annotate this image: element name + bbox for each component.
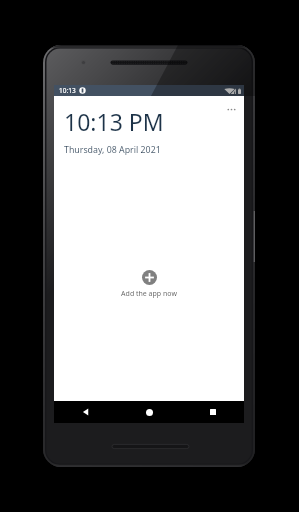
button[interactable]: More options bbox=[222, 100, 240, 118]
staticText: 10:13 bbox=[59, 86, 76, 95]
button[interactable]: Home bbox=[118, 401, 181, 423]
button[interactable]: Add the app now bbox=[121, 270, 177, 299]
button[interactable]: Recent apps bbox=[181, 401, 244, 423]
staticText: Add the app now bbox=[121, 289, 177, 299]
button[interactable]: Back bbox=[54, 401, 118, 423]
staticText: 10:13 PM bbox=[64, 106, 164, 137]
staticText: Thursday, 08 April 2021 bbox=[64, 144, 161, 156]
